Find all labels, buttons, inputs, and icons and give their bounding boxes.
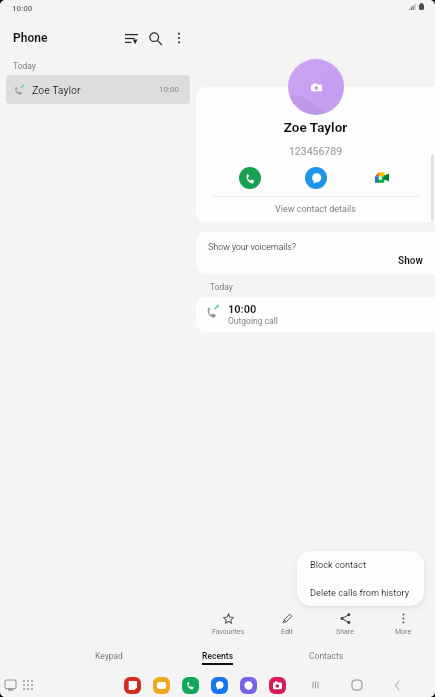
- button[interactable]: View contact details: [196, 197, 435, 222]
- staticText: Zoe Taylor: [32, 84, 81, 96]
- button[interactable]: Internet: [240, 677, 257, 694]
- button[interactable]: More options: [167, 26, 191, 50]
- staticText: 123456789: [196, 145, 435, 157]
- button[interactable]: Show: [393, 252, 428, 270]
- staticText: Keypad: [95, 651, 123, 661]
- staticText: Phone: [13, 31, 48, 45]
- button[interactable]: Favourites: [199, 611, 258, 637]
- button[interactable]: [196, 297, 435, 332]
- staticText: 10:00: [159, 85, 179, 94]
- button[interactable]: Sort: [119, 26, 143, 50]
- button[interactable]: Camera: [269, 677, 286, 694]
- staticText: Contacts: [309, 651, 344, 661]
- button[interactable]: Call: [239, 167, 261, 189]
- button[interactable]: Block contact: [297, 551, 424, 578]
- button[interactable]: Contact photo: [288, 59, 344, 115]
- button[interactable]: Message: [305, 167, 327, 189]
- staticText: More: [395, 628, 412, 636]
- button[interactable]: Messages: [211, 677, 228, 694]
- button[interactable]: Phone: [182, 677, 199, 694]
- button[interactable]: Zoe Taylor: [6, 75, 190, 104]
- staticText: 10:00: [12, 4, 33, 13]
- staticText: Today: [210, 282, 233, 292]
- button[interactable]: Delete calls from history: [297, 578, 424, 606]
- staticText: Delete calls from history: [310, 587, 409, 598]
- staticText: Share: [336, 628, 354, 636]
- button[interactable]: Share: [316, 611, 374, 637]
- button[interactable]: Keypad: [54, 648, 163, 668]
- button[interactable]: Home: [336, 673, 377, 697]
- staticText: Block contact: [310, 559, 366, 570]
- staticText: Edit: [281, 628, 293, 636]
- staticText: Favourites: [212, 628, 245, 636]
- staticText: Show: [398, 255, 423, 267]
- button[interactable]: Edit: [258, 611, 316, 637]
- staticText: 10:00: [228, 303, 257, 316]
- button[interactable]: More: [374, 611, 432, 637]
- button[interactable]: Notes: [124, 677, 141, 694]
- staticText: Show your voicemails?: [208, 241, 296, 252]
- button[interactable]: Contacts: [272, 648, 381, 668]
- button[interactable]: Files: [153, 677, 170, 694]
- button[interactable]: Video call: [371, 167, 392, 188]
- staticText: Outgoing call: [228, 316, 278, 326]
- button[interactable]: Search: [143, 26, 167, 50]
- staticText: View contact details: [275, 204, 356, 215]
- staticText: Zoe Taylor: [196, 119, 435, 135]
- button[interactable]: DeX mode: [1, 676, 19, 694]
- staticText: Recents: [202, 651, 234, 661]
- button[interactable]: Back: [377, 673, 418, 697]
- button[interactable]: All apps: [19, 676, 37, 694]
- staticText: Today: [13, 61, 36, 71]
- button[interactable]: Recents: [163, 648, 272, 668]
- button[interactable]: Recent apps: [295, 673, 336, 697]
